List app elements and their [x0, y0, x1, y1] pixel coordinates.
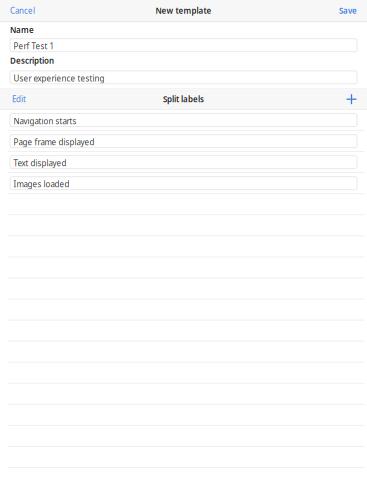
staticText: Split labels — [163, 94, 204, 104]
staticText: Perf Test 1 — [13, 41, 54, 51]
staticText: Name — [10, 25, 34, 35]
button[interactable]: Text displayed — [0, 152, 367, 173]
button[interactable]: Images loaded — [0, 173, 367, 194]
staticText: Images loaded — [13, 179, 69, 189]
button[interactable]: Edit — [0, 89, 36, 109]
staticText: Text displayed — [13, 158, 66, 168]
button[interactable]: Add label — [336, 89, 367, 109]
staticText: Description — [10, 55, 54, 66]
button[interactable]: Page frame displayed — [0, 131, 367, 152]
staticText: Page frame displayed — [13, 137, 94, 147]
staticText: Navigation starts — [13, 116, 76, 126]
staticText: User experience testing — [13, 73, 104, 84]
staticText: Edit — [12, 94, 26, 104]
button[interactable]: Navigation starts — [0, 110, 367, 131]
button[interactable]: Cancel — [0, 0, 43, 21]
button[interactable]: Save — [331, 0, 367, 21]
staticText: Save — [339, 5, 357, 16]
staticText: New template — [155, 5, 211, 16]
staticText: Cancel — [10, 5, 35, 16]
